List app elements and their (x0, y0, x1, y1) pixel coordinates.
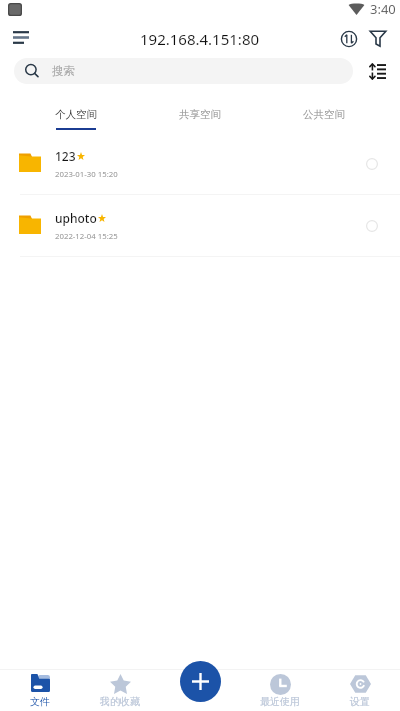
staticText: 个人空间 (55, 108, 97, 121)
button[interactable]: Filter (366, 27, 390, 51)
staticText: 123 (55, 148, 76, 164)
button[interactable]: 123 (0, 133, 400, 195)
staticText: 192.168.4.151:80 (140, 29, 260, 49)
staticText: 设置 (350, 695, 370, 708)
staticText: 最近使用 (260, 695, 300, 708)
button[interactable]: Transfers (337, 27, 361, 51)
button[interactable]: 共享空间 (138, 100, 262, 132)
staticText: 搜索 (52, 64, 75, 78)
staticText: uphoto (55, 210, 97, 226)
button[interactable]: Menu (5, 23, 37, 55)
button[interactable]: 文件 (0, 669, 80, 711)
button[interactable]: 最近使用 (240, 669, 320, 711)
button[interactable]: uphoto (0, 195, 400, 257)
staticText: 共享空间 (179, 108, 221, 121)
staticText: 3:40 (370, 0, 396, 18)
button[interactable]: 搜索 (14, 58, 353, 84)
staticText: 我的收藏 (100, 695, 140, 708)
button[interactable]: 我的收藏 (80, 669, 160, 711)
button[interactable]: 公共空间 (262, 100, 386, 132)
button[interactable]: 设置 (320, 669, 400, 711)
staticText: 文件 (30, 695, 50, 708)
button[interactable]: 个人空间 (14, 100, 138, 132)
staticText: 公共空间 (303, 108, 345, 121)
button[interactable]: Add (180, 661, 221, 702)
staticText: 2023-01-30 15:20 (55, 169, 118, 180)
button[interactable]: Sort (369, 63, 386, 80)
staticText: 2022-12-04 15:25 (55, 231, 118, 242)
